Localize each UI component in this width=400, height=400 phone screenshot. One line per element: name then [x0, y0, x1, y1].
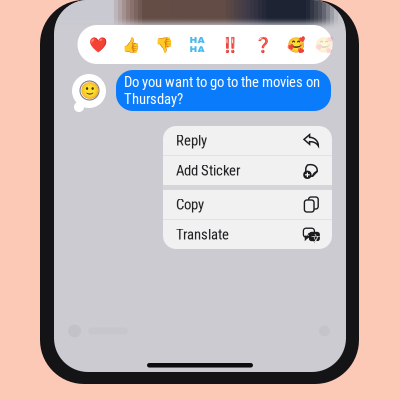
button[interactable]: Add Sticker [163, 156, 332, 185]
button[interactable]: Emphasize [213, 25, 246, 64]
staticText: ❤️ [89, 36, 107, 53]
staticText: Thursday? [124, 90, 183, 108]
staticText: 🥰 [287, 36, 305, 53]
staticText: ‼️ [221, 36, 239, 53]
button[interactable]: More [279, 25, 312, 64]
button[interactable]: Haha [180, 25, 213, 64]
button[interactable]: Question [246, 25, 279, 64]
staticText: 文 [311, 233, 320, 244]
staticText: A [306, 229, 312, 242]
staticText: 🥰 [314, 36, 332, 53]
button[interactable]: Dislike [147, 25, 180, 64]
staticText: Do you want to go to the movies on [124, 73, 320, 90]
staticText: Copy [176, 196, 204, 213]
staticText: 🙂 [79, 81, 99, 100]
staticText: Translate [176, 226, 229, 243]
button[interactable]: Like [114, 25, 147, 64]
staticText: HA [189, 44, 204, 54]
button[interactable]: Love [81, 25, 114, 64]
staticText: 👍 [122, 36, 140, 53]
button[interactable]: Translate [163, 220, 332, 249]
staticText: 👎 [155, 36, 173, 53]
button[interactable]: Reply [163, 126, 332, 155]
staticText: HA [189, 35, 204, 45]
staticText: Add Sticker [176, 162, 240, 179]
button[interactable]: Copy [163, 190, 332, 219]
staticText: Reply [176, 132, 207, 149]
staticText: ❓ [254, 36, 272, 53]
